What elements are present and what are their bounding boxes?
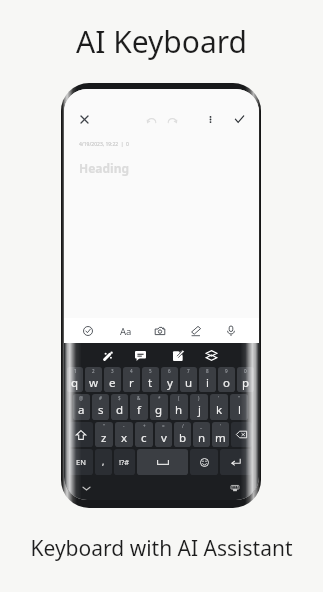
staticText: 5 bbox=[149, 368, 152, 374]
button[interactable]: ' bbox=[210, 394, 228, 420]
staticText: * bbox=[158, 395, 161, 401]
button[interactable]: EN bbox=[69, 449, 93, 475]
button[interactable]: Backspace bbox=[231, 422, 252, 447]
button[interactable]: ' bbox=[212, 422, 229, 447]
staticText: k bbox=[216, 402, 223, 418]
staticText: + bbox=[143, 423, 146, 429]
staticText: Heading bbox=[79, 160, 130, 176]
button[interactable]: / bbox=[174, 422, 191, 447]
button[interactable]: Chat bbox=[131, 346, 149, 364]
staticText: & bbox=[137, 395, 141, 401]
staticText: f bbox=[137, 402, 141, 418]
button[interactable]: Redo bbox=[164, 111, 180, 127]
button[interactable]: Undo bbox=[143, 111, 159, 127]
button[interactable]: 8 bbox=[199, 367, 216, 392]
button[interactable]: & bbox=[130, 394, 148, 420]
staticText: " bbox=[238, 395, 240, 401]
button[interactable]: " bbox=[95, 422, 113, 447]
staticText: AI Keyboard bbox=[0, 21, 323, 62]
staticText: h bbox=[175, 402, 183, 418]
staticText: / bbox=[182, 423, 184, 429]
staticText: x bbox=[121, 430, 128, 446]
staticText: 0 bbox=[244, 368, 247, 374]
button[interactable]: 6 bbox=[161, 367, 178, 392]
staticText: n bbox=[198, 430, 206, 446]
button[interactable]: ) bbox=[190, 394, 208, 420]
button[interactable]: + bbox=[135, 422, 153, 447]
staticText: 6 bbox=[168, 368, 171, 374]
button[interactable]: 0 bbox=[237, 367, 254, 392]
button[interactable]: - bbox=[115, 422, 133, 447]
staticText: z bbox=[101, 430, 107, 446]
staticText: o bbox=[223, 375, 230, 391]
button[interactable]: 5 bbox=[142, 367, 159, 392]
staticText: u bbox=[185, 375, 193, 391]
staticText: r bbox=[129, 375, 134, 391]
button[interactable]: 1 bbox=[67, 367, 83, 392]
staticText: j bbox=[198, 402, 201, 418]
staticText: a bbox=[78, 402, 85, 418]
button[interactable]: Emoji bbox=[190, 449, 218, 475]
staticText: $ bbox=[118, 395, 121, 401]
staticText: 2 bbox=[92, 368, 95, 374]
button[interactable]: Close bbox=[76, 111, 92, 127]
staticText: 8 bbox=[206, 368, 209, 374]
button[interactable]: Camera bbox=[151, 322, 169, 340]
button[interactable]: Hide keyboard bbox=[78, 480, 94, 496]
staticText: 4 bbox=[130, 368, 133, 374]
button[interactable]: Enter bbox=[220, 449, 252, 475]
button[interactable]: 9 bbox=[218, 367, 235, 392]
staticText: _ bbox=[200, 423, 203, 429]
button[interactable]: Shift bbox=[69, 422, 93, 447]
button[interactable]: Voice bbox=[222, 322, 240, 340]
button[interactable]: $ bbox=[111, 394, 128, 420]
staticText: 1 bbox=[74, 368, 77, 374]
button[interactable]: * bbox=[150, 394, 168, 420]
staticText: 3 bbox=[111, 368, 114, 374]
button[interactable]: 2 bbox=[85, 367, 102, 392]
button[interactable]: ( bbox=[170, 394, 188, 420]
staticText: g bbox=[155, 402, 163, 418]
button[interactable]: = bbox=[155, 422, 172, 447]
button[interactable]: 7 bbox=[180, 367, 197, 392]
button[interactable]: Layers bbox=[202, 346, 220, 364]
staticText: m bbox=[215, 430, 226, 446]
staticText: 9 bbox=[225, 368, 228, 374]
button[interactable]: # bbox=[92, 394, 109, 420]
staticText: d bbox=[116, 402, 124, 418]
staticText: - bbox=[123, 423, 125, 429]
button[interactable]: Draw bbox=[187, 322, 205, 340]
button[interactable]: " bbox=[230, 394, 248, 420]
staticText: ( bbox=[178, 395, 180, 401]
button[interactable]: !?# bbox=[114, 449, 135, 475]
staticText: @ bbox=[79, 395, 84, 401]
staticText: ) bbox=[198, 395, 200, 401]
staticText: e bbox=[109, 375, 116, 391]
button[interactable]: 3 bbox=[104, 367, 121, 392]
button[interactable]: Switch keyboard bbox=[227, 480, 243, 496]
staticText: s bbox=[98, 402, 104, 418]
button[interactable]: Text format bbox=[117, 322, 135, 340]
staticText: Aa bbox=[120, 325, 132, 338]
button[interactable]: _ bbox=[193, 422, 210, 447]
button[interactable]: Save bbox=[231, 111, 247, 127]
button[interactable]: Checklist bbox=[79, 322, 97, 340]
button[interactable]: @ bbox=[73, 394, 90, 420]
button[interactable]: Compose bbox=[169, 346, 187, 364]
staticText: w bbox=[89, 375, 99, 391]
staticText: !?# bbox=[119, 457, 130, 467]
staticText: ' bbox=[218, 395, 220, 401]
button[interactable]: , bbox=[95, 449, 112, 475]
staticText: y bbox=[167, 375, 173, 391]
button[interactable]: More options bbox=[202, 111, 218, 127]
button[interactable]: Magic compose bbox=[99, 346, 117, 364]
staticText: 4/19/2023, 19:22 | 0 bbox=[79, 141, 129, 148]
staticText: ' bbox=[220, 423, 222, 429]
staticText: " bbox=[103, 423, 105, 429]
staticText: l bbox=[238, 402, 241, 418]
staticText: b bbox=[179, 430, 187, 446]
staticText: p bbox=[242, 375, 250, 391]
button[interactable]: Space bbox=[137, 449, 188, 475]
button[interactable]: 4 bbox=[123, 367, 140, 392]
staticText: # bbox=[99, 395, 102, 401]
